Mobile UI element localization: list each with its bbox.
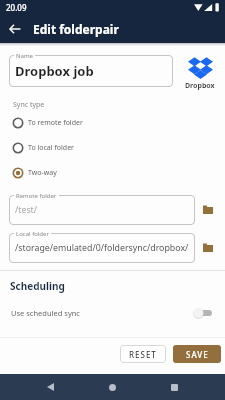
staticText: Use scheduled sync [11, 308, 80, 318]
staticText: Remote folder [16, 192, 57, 200]
button[interactable] [9, 55, 173, 87]
staticText: Two-way [28, 168, 57, 178]
staticText: RESET [129, 349, 157, 360]
staticText: Edit folderpair [33, 21, 119, 37]
button[interactable]: Back [19, 374, 81, 400]
button[interactable]: Use scheduled sync [0, 304, 225, 322]
staticText: Scheduling [10, 279, 65, 293]
button[interactable]: Home [81, 374, 143, 400]
staticText: SAVE [186, 349, 209, 360]
button[interactable]: Recent apps [143, 374, 205, 400]
staticText: 20.09 [6, 2, 27, 13]
button[interactable]: To local folder [0, 135, 225, 160]
staticText: Sync type [13, 100, 45, 110]
staticText: /test/ [15, 204, 38, 216]
button[interactable]: RESET [120, 345, 166, 363]
button[interactable]: Back [0, 15, 30, 43]
staticText: Dropbox job [15, 62, 94, 80]
button[interactable]: Browse folder [201, 240, 215, 254]
button[interactable] [9, 195, 195, 225]
button[interactable] [9, 233, 195, 263]
staticText: Dropbox [185, 81, 215, 91]
button[interactable]: To remote folder [0, 110, 225, 135]
staticText: Name [16, 52, 33, 60]
button[interactable]: Browse folder [201, 202, 215, 216]
button[interactable]: SAVE [173, 345, 221, 363]
button[interactable]: Two-way [0, 160, 225, 185]
staticText: Local folder [16, 230, 49, 238]
staticText: To local folder [28, 143, 75, 153]
staticText: /storage/emulated/0/foldersync/dropbox/ [15, 242, 189, 254]
staticText: To remote folder [28, 118, 83, 128]
